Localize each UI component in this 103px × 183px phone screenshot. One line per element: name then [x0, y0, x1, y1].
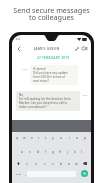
- staticText: y: [52, 135, 54, 140]
- button[interactable]: ,: [23, 169, 27, 178]
- staticText: JAMES GREEN: [34, 46, 60, 51]
- button[interactable]: m: [73, 159, 81, 168]
- staticText: g: [52, 149, 55, 154]
- button[interactable]: Video call: [81, 45, 88, 52]
- button[interactable]: k: [71, 147, 78, 156]
- button[interactable]: f: [42, 147, 50, 156]
- staticText: r: [38, 135, 40, 140]
- staticText: c: [44, 161, 46, 166]
- staticText: o: [76, 135, 79, 140]
- staticText: q: [16, 135, 19, 140]
- button[interactable]: b: [57, 159, 65, 168]
- staticText: p: [84, 135, 87, 140]
- button[interactable]: i: [65, 133, 73, 142]
- button[interactable]: p: [81, 133, 89, 142]
- staticText: k: [74, 149, 76, 154]
- button[interactable]: t: [42, 133, 49, 142]
- staticText: h: [59, 149, 62, 154]
- staticText: ?123: [16, 172, 22, 175]
- button[interactable]: q: [14, 133, 21, 142]
- button[interactable]: .: [76, 169, 80, 178]
- staticText: 27 FEBRUARY 2019: [37, 56, 70, 60]
- staticText: Hi James! Did you have any update from G…: [33, 67, 68, 83]
- button[interactable]: d: [34, 147, 42, 156]
- button[interactable]: x: [31, 159, 40, 168]
- staticText: i: [69, 135, 70, 140]
- button[interactable]: ?123: [14, 169, 23, 178]
- staticText: t: [45, 135, 47, 140]
- button[interactable]: o: [73, 133, 81, 142]
- staticText: Send secure messages to colleagues: [0, 5, 103, 23]
- staticText: d: [37, 149, 40, 154]
- staticText: s: [29, 149, 31, 154]
- staticText: b: [60, 161, 63, 166]
- button[interactable]: y: [49, 133, 57, 142]
- button[interactable]: Call: [73, 45, 80, 52]
- button[interactable]: s: [26, 147, 34, 156]
- staticText: f: [45, 149, 47, 154]
- staticText: ,: [25, 172, 26, 176]
- button[interactable]: j: [64, 147, 71, 156]
- button[interactable]: r: [35, 133, 42, 142]
- button[interactable]: Shift: [14, 159, 22, 168]
- button[interactable]: Backspace: [81, 159, 89, 168]
- button[interactable]: u: [57, 133, 65, 142]
- staticText: j: [67, 149, 68, 154]
- staticText: z: [26, 161, 28, 166]
- button[interactable]: v: [49, 159, 57, 168]
- button[interactable]: z: [22, 159, 31, 168]
- staticText: v: [52, 161, 54, 166]
- button[interactable]: a: [18, 147, 26, 156]
- button[interactable]: e: [28, 133, 35, 142]
- button[interactable]: n: [65, 159, 73, 168]
- button[interactable]: c: [40, 159, 49, 168]
- staticText: 13:33: [22, 68, 28, 71]
- staticText: e: [31, 135, 33, 140]
- staticText: x: [35, 161, 37, 166]
- button[interactable]: Back: [15, 45, 22, 52]
- button[interactable]: w: [21, 133, 28, 142]
- staticText: n: [68, 161, 71, 166]
- staticText: l: [81, 149, 82, 154]
- staticText: 13:35: [82, 94, 88, 97]
- staticText: u: [60, 135, 63, 140]
- staticText: a: [21, 149, 23, 154]
- button[interactable]: l: [78, 147, 85, 156]
- button[interactable]: h: [57, 147, 64, 156]
- staticText: w: [23, 135, 26, 140]
- staticText: No, I'm still waiting for the decision f…: [19, 93, 71, 109]
- staticText: .: [78, 172, 79, 176]
- staticText: m: [75, 161, 79, 166]
- button[interactable]: Send: [80, 169, 89, 178]
- button[interactable]: g: [50, 147, 57, 156]
